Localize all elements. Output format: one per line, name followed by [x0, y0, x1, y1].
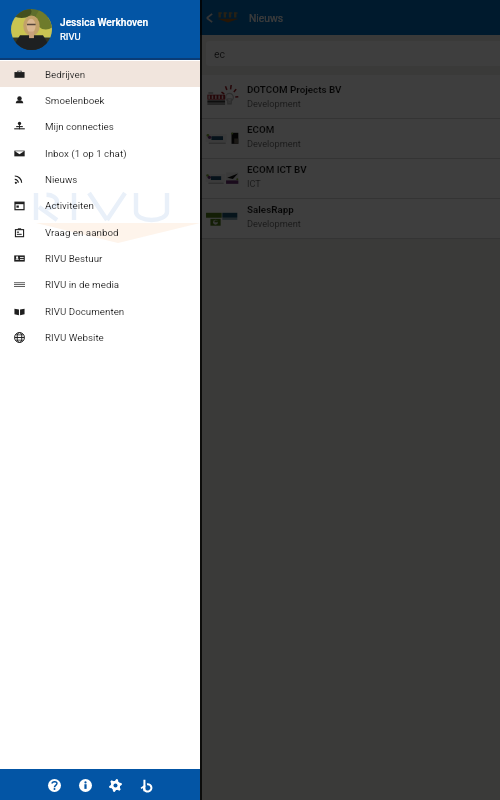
button[interactable]: Inbox (1 op 1 chat)	[0, 140, 200, 166]
button[interactable]: Activiteiten	[0, 192, 200, 218]
button[interactable]: RIVU Documenten	[0, 298, 200, 324]
staticText: Inbox (1 op 1 chat)	[45, 148, 127, 159]
staticText: Nieuws	[249, 12, 284, 24]
staticText: DOTCOM Projects BV	[247, 84, 342, 95]
staticText: Bedrijven	[45, 69, 86, 80]
staticText: Vraag en aanbod	[45, 227, 119, 238]
button[interactable]: Vraag en aanbod	[0, 219, 200, 245]
button[interactable]: Bedrijven	[0, 61, 200, 87]
staticText: Development	[247, 98, 301, 109]
staticText: RIVU	[60, 31, 81, 42]
staticText: ECOM	[247, 124, 275, 135]
staticText: SalesRapp	[247, 204, 294, 215]
staticText: RIVU Bestuur	[45, 253, 103, 264]
staticText: RIVU Website	[45, 332, 104, 343]
staticText: RIVU in de media	[45, 279, 120, 290]
button[interactable]: Nieuws	[0, 166, 200, 192]
button[interactable]: Jessica Werkhoven	[0, 0, 200, 58]
button[interactable]: RIVU in de media	[0, 271, 200, 297]
button[interactable]: Info	[70, 770, 100, 800]
staticText: Nieuws	[45, 174, 78, 185]
staticText: Development	[247, 138, 301, 149]
button[interactable]: SalesRapp	[0, 199, 500, 238]
staticText: Development	[247, 218, 301, 229]
staticText: ICT	[247, 178, 261, 189]
staticText: Jessica Werkhoven	[60, 17, 149, 29]
staticText: ECOM ICT BV	[247, 164, 307, 175]
button[interactable]: DOTCOM Projects BV	[0, 79, 500, 118]
button[interactable]: Mijn connecties	[0, 113, 200, 139]
staticText: RIVU Documenten	[45, 306, 125, 317]
staticText: Activiteiten	[45, 200, 94, 211]
button[interactable]: Settings	[100, 770, 130, 800]
staticText: Mijn connecties	[45, 121, 114, 132]
staticText: Smoelenboek	[45, 95, 105, 106]
button[interactable]: Smoelenboek	[0, 87, 200, 113]
button[interactable]: RIVU Bestuur	[0, 245, 200, 271]
button[interactable]: Help	[39, 770, 69, 800]
button[interactable]: ECOM	[0, 119, 500, 158]
button[interactable]: ECOM ICT BV	[0, 159, 500, 198]
staticText: ec	[214, 48, 226, 60]
button[interactable]: RIVU website	[131, 770, 161, 800]
button[interactable]: RIVU Website	[0, 324, 200, 350]
button[interactable]: Back	[200, 0, 219, 35]
